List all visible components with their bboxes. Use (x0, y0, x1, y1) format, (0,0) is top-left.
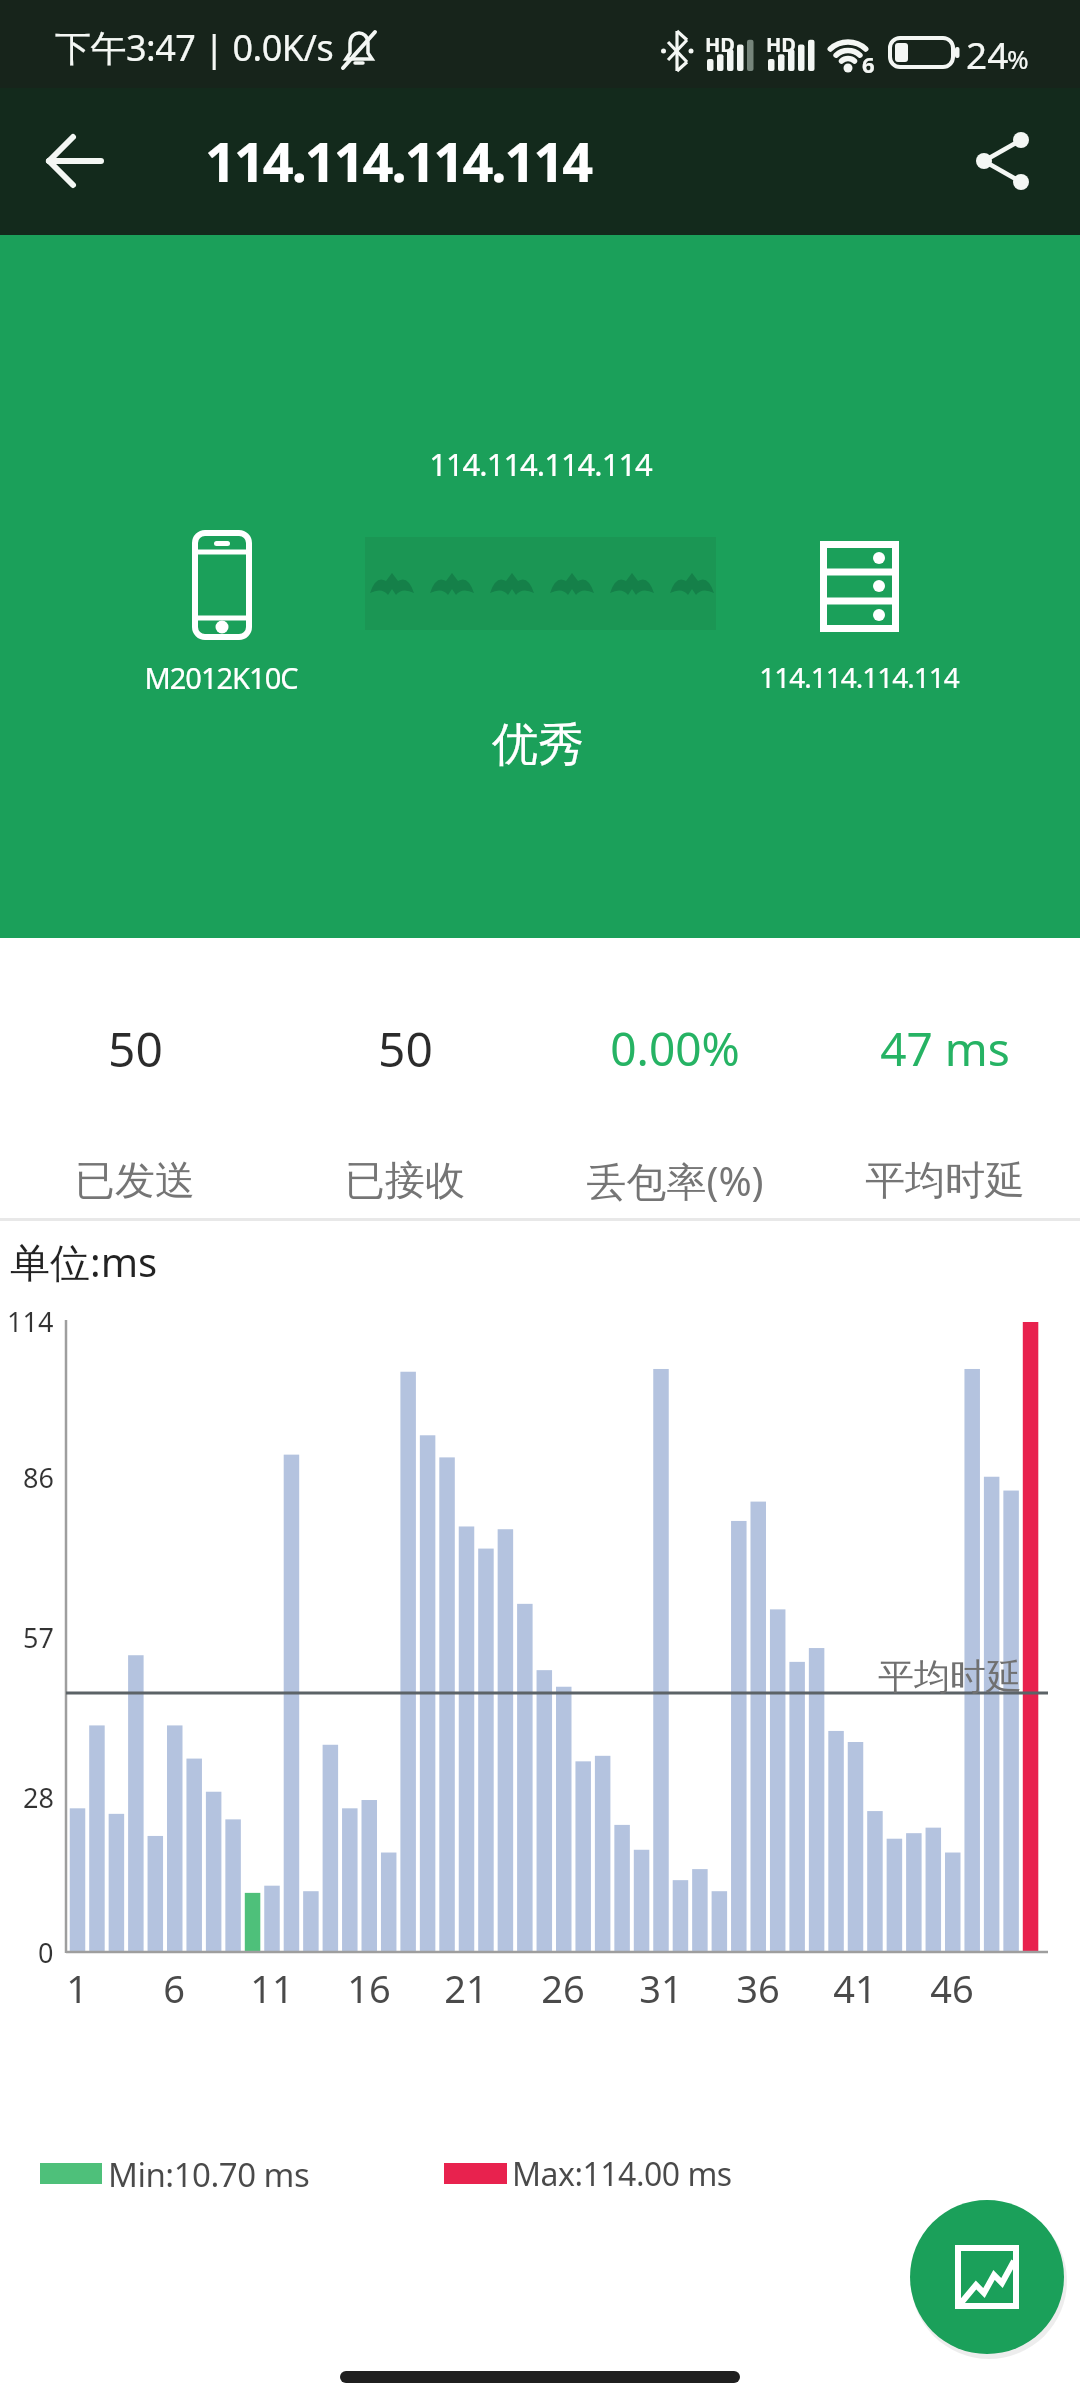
staticText: 114.114.114.114 (759, 658, 959, 696)
staticText: 114 (7, 1303, 54, 1340)
staticText: 57 (23, 1619, 54, 1656)
staticText: M2012K10C (144, 658, 298, 697)
staticText: 21 (444, 1962, 488, 2014)
staticText: 28 (23, 1779, 54, 1816)
button[interactable] (955, 116, 1050, 206)
staticText: 47 ms (880, 1017, 1010, 1080)
staticText: 0 (38, 1934, 54, 1971)
staticText: 0.00% (610, 1017, 740, 1080)
staticText: 26 (541, 1962, 585, 2014)
staticText: 50 (378, 1016, 433, 1081)
staticText: 16 (347, 1962, 391, 2014)
staticText: 11 (250, 1962, 294, 2014)
button[interactable] (30, 116, 120, 206)
staticText: 114.114.114.114 (429, 443, 652, 485)
staticText: 1 (66, 1962, 88, 2014)
staticText: 41 (833, 1962, 877, 2014)
staticText: 丢包率(%) (586, 1153, 764, 1208)
staticText: 单位:ms (10, 1234, 158, 1289)
staticText: 86 (23, 1459, 54, 1496)
button[interactable] (910, 2200, 1064, 2354)
staticText: HD (766, 31, 796, 58)
staticText: Min:10.70 ms (108, 2152, 310, 2197)
staticText: 已接收 (345, 1155, 465, 1205)
staticText: 下午3:47 | 0.0K/s (55, 23, 334, 72)
staticText: 114.114.114.114 (205, 124, 592, 198)
staticText: Max:114.00 ms (512, 2152, 732, 2196)
staticText: 优秀 (492, 716, 584, 774)
staticText: 50 (108, 1016, 163, 1081)
staticText: 6 (163, 1962, 185, 2014)
staticText: 已发送 (75, 1155, 195, 1205)
staticText: 6 (862, 49, 875, 79)
staticText: 平均时延 (878, 1654, 1022, 1699)
staticText: % (1007, 41, 1029, 76)
staticText: 平均时延 (865, 1155, 1025, 1205)
staticText: 31 (639, 1962, 683, 2014)
staticText: 36 (736, 1962, 780, 2014)
staticText: HD (705, 31, 735, 58)
staticText: 24 (966, 29, 1009, 79)
staticText: 46 (930, 1962, 974, 2014)
